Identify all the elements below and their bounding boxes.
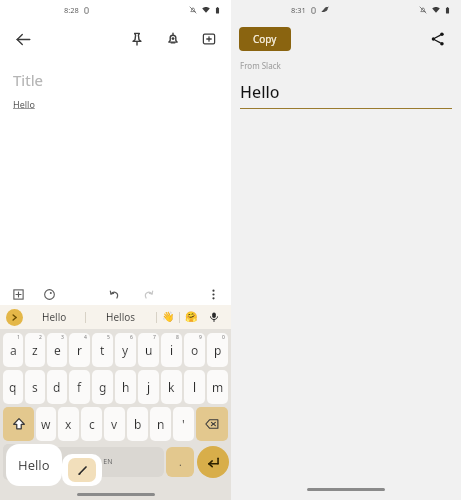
button[interactable]: c (81, 407, 102, 441)
button[interactable]: r (69, 333, 90, 367)
staticText: g (99, 379, 107, 395)
staticText: e (54, 342, 61, 358)
staticText: Hello (42, 310, 67, 324)
button[interactable]: a (3, 333, 23, 367)
button[interactable]: Edit (68, 458, 96, 482)
button[interactable]: i (161, 333, 182, 367)
staticText: x (65, 416, 72, 432)
staticText: Hello (240, 81, 280, 103)
staticText: ' (182, 416, 185, 432)
button[interactable]: f (69, 370, 90, 404)
button[interactable]: h (115, 370, 136, 404)
button[interactable]: d (47, 370, 67, 404)
staticText: 1 (17, 334, 20, 341)
staticText: i (170, 342, 174, 358)
button[interactable]: Backspace (196, 407, 228, 441)
button[interactable]: e (47, 333, 67, 367)
staticText: From Slack (240, 60, 281, 71)
button[interactable]: Expand (6, 309, 23, 326)
staticText: d (53, 379, 61, 395)
button[interactable]: t (92, 333, 113, 367)
staticText: b (134, 416, 142, 432)
staticText: 👋 (162, 311, 175, 323)
button[interactable]: ' (173, 407, 194, 441)
button[interactable]: u (138, 333, 159, 367)
staticText: 6 (130, 334, 133, 341)
button[interactable]: Reminder (161, 27, 185, 51)
button[interactable]: Palette (40, 285, 58, 303)
button[interactable]: j (138, 370, 159, 404)
button[interactable]: p (207, 333, 228, 367)
button[interactable]: Shift (3, 407, 34, 441)
staticText: f (77, 379, 82, 395)
staticText: Hello (18, 456, 50, 474)
button[interactable]: Hello (23, 305, 85, 329)
button[interactable]: w (36, 407, 56, 441)
staticText: y (122, 342, 129, 358)
button[interactable]: v (104, 407, 125, 441)
staticText: o (191, 342, 199, 358)
staticText: v (111, 416, 118, 432)
button[interactable]: . (166, 447, 194, 477)
staticText: l (193, 379, 197, 395)
staticText: q (9, 379, 17, 395)
staticText: FR • EN (89, 457, 113, 467)
staticText: w (41, 416, 51, 432)
button[interactable]: s (25, 370, 45, 404)
button[interactable]: Undo (105, 285, 123, 303)
button[interactable]: Voice input (205, 308, 223, 326)
staticText: 0 (222, 334, 225, 341)
button[interactable]: Pin (125, 27, 149, 51)
staticText: 2 (39, 334, 42, 341)
staticText: h (122, 379, 130, 395)
staticText: Hello (13, 98, 35, 110)
button[interactable]: Hello (6, 444, 62, 486)
button[interactable]: q (3, 370, 23, 404)
staticText: 8:31 (291, 5, 306, 15)
staticText: 🤗 (185, 311, 198, 323)
staticText: a (10, 342, 17, 358)
button[interactable]: k (161, 370, 182, 404)
button[interactable]: b (127, 407, 148, 441)
staticText: Hellos (106, 310, 136, 324)
button[interactable]: Hellos (86, 305, 156, 329)
staticText: 4 (84, 334, 87, 341)
staticText: 9 (199, 334, 202, 341)
button[interactable]: n (150, 407, 171, 441)
button[interactable]: m (207, 370, 228, 404)
button[interactable]: l (184, 370, 205, 404)
staticText: r (77, 342, 82, 358)
staticText: u (145, 342, 153, 358)
button[interactable]: FR • EN (37, 447, 164, 477)
button[interactable]: Insert (9, 285, 27, 303)
staticText: . (179, 455, 182, 469)
button[interactable]: o (184, 333, 205, 367)
button[interactable]: x (58, 407, 79, 441)
staticText: 7 (153, 334, 156, 341)
button[interactable]: Copy (239, 27, 291, 51)
button[interactable]: Back (10, 26, 36, 52)
button[interactable]: Hug emoji (180, 305, 202, 329)
button[interactable]: g (92, 370, 113, 404)
staticText: s (32, 379, 38, 395)
staticText: c (89, 416, 95, 432)
button[interactable]: Redo (139, 285, 157, 303)
button[interactable]: Archive (197, 27, 221, 51)
staticText: p (214, 342, 222, 358)
staticText: 3 (61, 334, 64, 341)
button[interactable]: y (115, 333, 136, 367)
staticText: Copy (253, 32, 277, 46)
staticText: k (168, 379, 175, 395)
button[interactable]: z (25, 333, 45, 367)
button[interactable]: Share (425, 26, 451, 52)
button[interactable]: More (204, 285, 222, 303)
button[interactable]: Wave emoji (157, 305, 179, 329)
staticText: n (157, 416, 165, 432)
staticText: 5 (107, 334, 110, 341)
staticText: m (212, 379, 224, 395)
staticText: t (100, 342, 105, 358)
staticText: Title (13, 70, 43, 90)
staticText: z (32, 342, 38, 358)
button[interactable]: Enter (197, 446, 229, 478)
button[interactable]: Symbols (3, 444, 34, 480)
